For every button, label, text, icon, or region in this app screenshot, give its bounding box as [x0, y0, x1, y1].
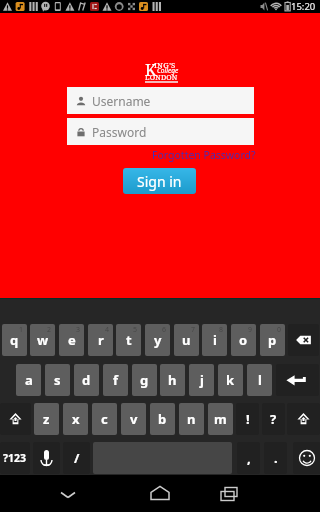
staticText: m: [214, 410, 227, 428]
staticText: Sign in: [137, 172, 182, 191]
button[interactable]: e: [59, 324, 84, 356]
staticText: a: [25, 371, 33, 389]
staticText: LONDON: [145, 72, 178, 82]
staticText: /: [74, 449, 80, 467]
staticText: !: [246, 410, 250, 428]
button[interactable]: w: [30, 324, 55, 356]
staticText: 3: [76, 325, 81, 335]
staticText: x: [72, 410, 80, 428]
staticText: 4: [105, 325, 110, 335]
staticText: j: [200, 371, 204, 389]
button[interactable]: d: [74, 364, 99, 396]
button[interactable]: h: [160, 364, 185, 396]
staticText: Forgotten Password?: [152, 148, 256, 162]
staticText: 1: [19, 325, 24, 335]
button[interactable]: n: [179, 403, 204, 435]
staticText: ING'S: [154, 60, 176, 71]
staticText: 9: [248, 325, 253, 335]
button[interactable]: i: [202, 324, 227, 356]
button[interactable]: mic: [33, 442, 60, 474]
button[interactable]: r: [88, 324, 113, 356]
button[interactable]: f: [103, 364, 128, 396]
staticText: z: [43, 410, 50, 428]
staticText: g: [140, 371, 149, 389]
staticText: 6: [162, 325, 167, 335]
staticText: College: [157, 66, 179, 75]
button[interactable]: shift: [287, 403, 320, 435]
button[interactable]: s: [45, 364, 70, 396]
button[interactable]: shift: [0, 403, 31, 435]
staticText: t: [126, 331, 132, 349]
staticText: d: [82, 371, 91, 389]
button[interactable]: Forgotten Password?: [148, 148, 256, 162]
button[interactable]: backspace: [288, 324, 319, 356]
staticText: q: [10, 331, 19, 349]
button[interactable]: .: [264, 442, 287, 474]
staticText: 0: [277, 325, 282, 335]
staticText: f: [113, 371, 119, 389]
staticText: y: [154, 331, 162, 349]
button[interactable]: c: [92, 403, 117, 435]
staticText: .: [274, 449, 278, 467]
button[interactable]: l: [247, 364, 272, 396]
staticText: b: [158, 410, 167, 428]
button[interactable]: b: [150, 403, 175, 435]
staticText: w: [37, 331, 49, 349]
staticText: n: [187, 410, 196, 428]
staticText: e: [68, 331, 76, 349]
button[interactable]: t: [116, 324, 141, 356]
staticText: ?123: [3, 451, 27, 465]
staticText: Username: [92, 93, 151, 109]
staticText: ?: [270, 410, 277, 428]
button[interactable]: x: [63, 403, 88, 435]
button[interactable]: m: [208, 403, 233, 435]
staticText: r: [98, 331, 104, 349]
button[interactable]: Recents: [205, 475, 253, 512]
button[interactable]: ?123: [0, 442, 30, 474]
button[interactable]: g: [132, 364, 157, 396]
staticText: v: [130, 410, 138, 428]
button[interactable]: Password: [67, 118, 254, 145]
staticText: c: [101, 410, 108, 428]
staticText: o: [239, 331, 248, 349]
staticText: K: [145, 59, 157, 81]
button[interactable]: q: [2, 324, 27, 356]
button[interactable]: ?: [262, 403, 285, 435]
button[interactable]: a: [16, 364, 41, 396]
button[interactable]: p: [260, 324, 285, 356]
button[interactable]: j: [189, 364, 214, 396]
staticText: Password: [92, 124, 147, 140]
button[interactable]: y: [145, 324, 170, 356]
button[interactable]: o: [231, 324, 256, 356]
staticText: 7: [191, 325, 196, 335]
staticText: 2: [47, 325, 52, 335]
button[interactable]: Home: [136, 475, 184, 512]
staticText: ,: [247, 449, 251, 467]
staticText: p: [268, 331, 277, 349]
button[interactable]: v: [121, 403, 146, 435]
staticText: u: [182, 331, 191, 349]
button[interactable]: ,: [237, 442, 260, 474]
staticText: l: [258, 371, 262, 389]
staticText: 5: [133, 325, 138, 335]
button[interactable]: z: [34, 403, 59, 435]
button[interactable]: Sign in: [123, 168, 196, 194]
button[interactable]: !: [236, 403, 259, 435]
button[interactable]: /: [63, 442, 90, 474]
button[interactable]: enter: [276, 364, 319, 396]
staticText: h: [168, 371, 177, 389]
button[interactable]: Username: [67, 87, 254, 114]
button[interactable]: k: [218, 364, 243, 396]
button[interactable]: u: [174, 324, 199, 356]
staticText: k: [226, 371, 235, 389]
staticText: s: [54, 371, 61, 389]
staticText: 15:20: [291, 0, 316, 13]
staticText: 8: [219, 325, 224, 335]
button[interactable]: emoji: [293, 442, 320, 474]
staticText: i: [213, 331, 217, 349]
